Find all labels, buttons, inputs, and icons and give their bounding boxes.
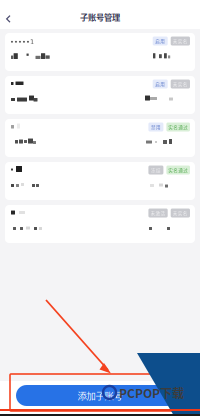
button[interactable]: 未激活 — [5, 205, 195, 243]
staticText: 未实名 — [173, 38, 188, 44]
staticText: 子账号管理 — [80, 11, 120, 23]
button[interactable]: 启用 — [5, 76, 195, 114]
staticText: 未实名 — [173, 81, 188, 87]
staticText: 实名通过 — [168, 167, 188, 173]
button[interactable]: 冻结 — [5, 162, 195, 200]
staticText: 启用 — [155, 81, 165, 87]
button[interactable]: 返回 — [0, 0, 18, 29]
staticText: 添加子账号 — [77, 389, 122, 402]
staticText: 冻结 — [151, 167, 161, 173]
staticText: 未实名 — [173, 210, 188, 216]
button[interactable]: •••••1 — [5, 33, 195, 71]
button[interactable]: 添加子账号 — [16, 385, 184, 406]
staticText: 启用 — [155, 38, 165, 44]
staticText: 禁用 — [151, 124, 161, 130]
staticText: 未激活 — [151, 210, 166, 216]
staticText: PCPOP下载 — [119, 384, 184, 401]
button[interactable]: 禁用 — [5, 119, 195, 157]
staticText: 实名通过 — [168, 124, 188, 130]
staticText: •••••1 — [10, 38, 34, 46]
